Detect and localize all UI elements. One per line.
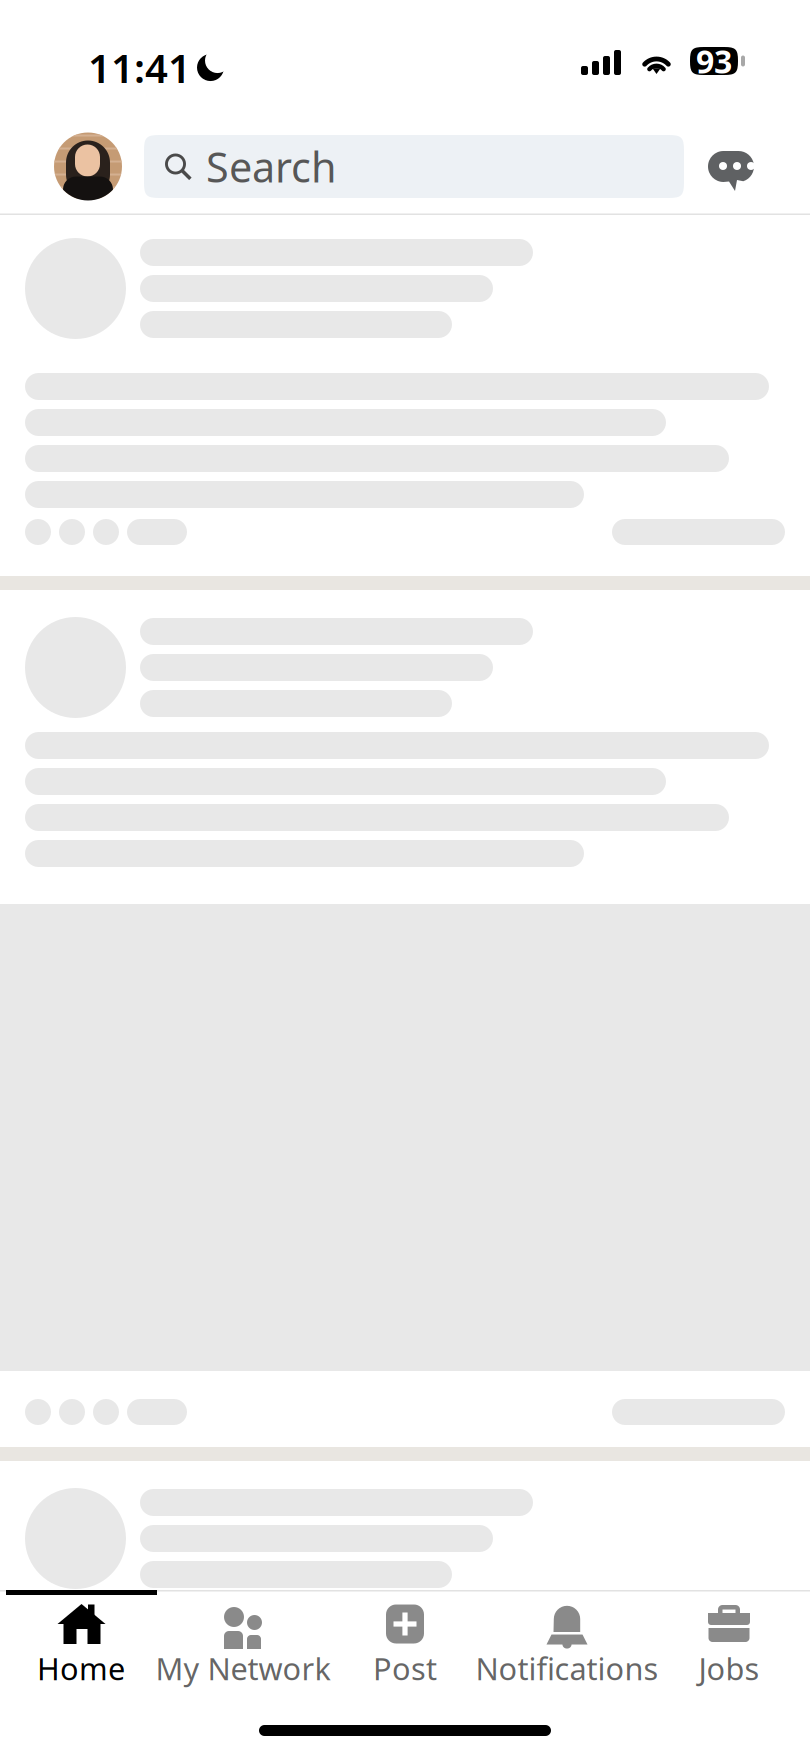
button[interactable]: Jobs (648, 1595, 810, 1692)
staticText: My Network (155, 1648, 330, 1689)
button[interactable]: Messaging (695, 135, 767, 197)
staticText: Post (373, 1648, 437, 1689)
staticText: 93 (696, 40, 732, 82)
staticText: Notifications (475, 1648, 658, 1689)
button[interactable]: Search (144, 135, 684, 198)
button[interactable]: Home (0, 1595, 162, 1692)
button[interactable]: Post (324, 1595, 486, 1692)
staticText: Home (37, 1648, 125, 1689)
staticText: Jobs (698, 1648, 759, 1689)
button[interactable]: Notifications (486, 1595, 648, 1692)
button[interactable]: Profile (54, 132, 122, 200)
button[interactable]: My Network (162, 1595, 324, 1692)
staticText: 11:41 (88, 41, 191, 94)
staticText: Search (206, 139, 337, 194)
